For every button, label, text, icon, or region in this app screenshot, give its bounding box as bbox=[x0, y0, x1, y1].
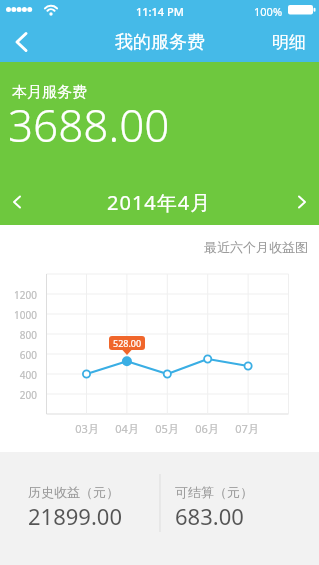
staticText: 683.00 bbox=[175, 501, 244, 531]
staticText: 600 bbox=[0, 348, 37, 362]
staticText: 1200 bbox=[0, 288, 37, 302]
staticText: 100% bbox=[254, 4, 283, 19]
staticText: 05月 bbox=[147, 421, 187, 436]
staticText: 最近六个月收益图 bbox=[204, 239, 308, 255]
button[interactable] bbox=[283, 179, 319, 225]
staticText: 21899.00 bbox=[28, 501, 122, 531]
staticText: 800 bbox=[0, 328, 37, 342]
button[interactable]: 明细 bbox=[259, 24, 319, 61]
staticText: 我的服务费 bbox=[115, 31, 205, 54]
button[interactable] bbox=[0, 22, 44, 62]
button[interactable] bbox=[0, 179, 36, 225]
staticText: 200 bbox=[0, 388, 37, 402]
staticText: 1000 bbox=[0, 308, 37, 322]
staticText: 2014年4月 bbox=[107, 189, 212, 216]
staticText: 06月 bbox=[187, 421, 227, 436]
staticText: 本月服务费 bbox=[12, 83, 87, 102]
staticText: 历史收益（元） bbox=[28, 484, 119, 500]
staticText: 04月 bbox=[107, 421, 147, 436]
staticText: 03月 bbox=[67, 421, 107, 436]
staticText: 3688.00 bbox=[8, 95, 170, 155]
staticText: 400 bbox=[0, 368, 37, 382]
staticText: 528.00 bbox=[113, 337, 142, 349]
staticText: 明细 bbox=[272, 32, 306, 53]
button[interactable]: 历史收益（元） bbox=[0, 452, 159, 565]
button[interactable]: 可结算（元） bbox=[159, 452, 319, 565]
staticText: 可结算（元） bbox=[175, 484, 253, 500]
staticText: 07月 bbox=[227, 421, 267, 436]
staticText: 11:14 PM bbox=[136, 4, 184, 19]
